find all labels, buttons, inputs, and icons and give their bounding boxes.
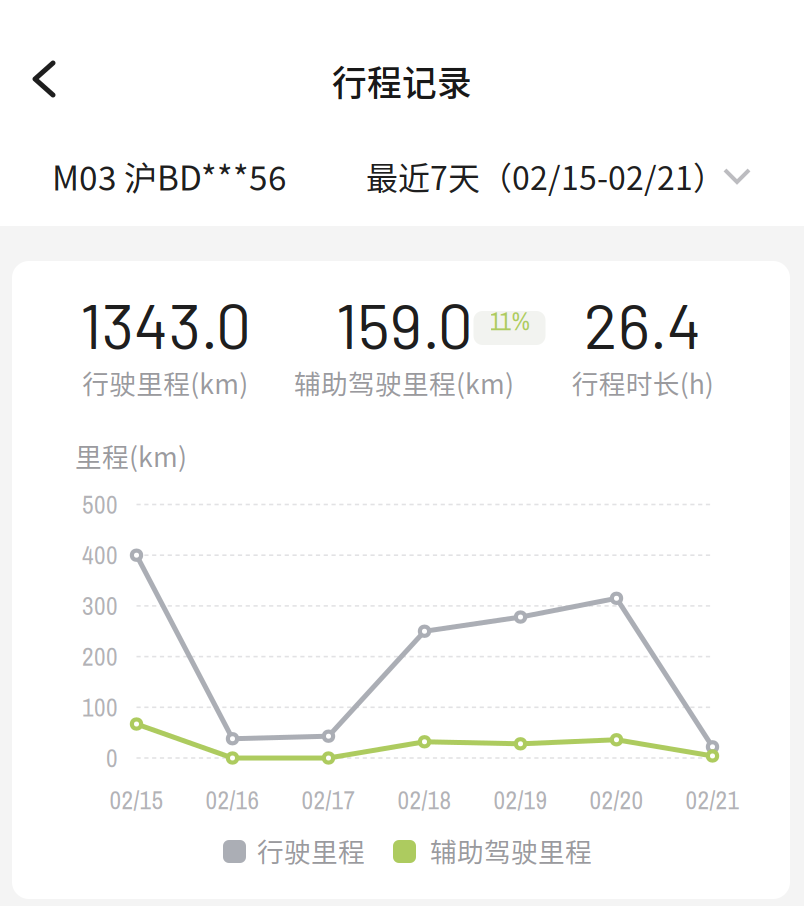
staticText: 11% xyxy=(489,304,529,338)
staticText: 02/18 xyxy=(397,783,451,817)
staticText: 159.0 xyxy=(335,286,472,362)
staticText: 100 xyxy=(82,690,118,724)
staticText: 0 xyxy=(106,741,118,775)
staticText: 300 xyxy=(82,589,118,623)
staticText: 行程时长(h) xyxy=(572,363,714,402)
staticText: 辅助驾驶里程(km) xyxy=(294,363,514,402)
staticText: 400 xyxy=(82,538,118,572)
staticText: 里程(km) xyxy=(75,436,187,475)
button[interactable]: 最近7天（02/15-02/21） xyxy=(366,156,749,196)
staticText: 辅助驾驶里程 xyxy=(430,831,592,870)
staticText: 最近7天（02/15-02/21） xyxy=(366,153,725,199)
staticText: 26.4 xyxy=(584,286,702,362)
staticText: 02/21 xyxy=(685,783,739,817)
staticText: 02/20 xyxy=(589,783,643,817)
staticText: 200 xyxy=(82,639,118,674)
staticText: 1343.0 xyxy=(80,286,251,362)
staticText: 02/16 xyxy=(205,783,259,817)
staticText: 行驶里程(km) xyxy=(82,363,248,402)
button[interactable]: Back xyxy=(13,41,75,117)
staticText: M03 沪BD***56 xyxy=(52,152,287,200)
staticText: 行程记录 xyxy=(332,56,472,106)
staticText: 02/17 xyxy=(301,783,355,817)
staticText: 02/19 xyxy=(493,783,547,817)
staticText: 02/15 xyxy=(109,783,163,817)
staticText: 行驶里程 xyxy=(257,831,365,870)
staticText: 500 xyxy=(82,487,118,521)
